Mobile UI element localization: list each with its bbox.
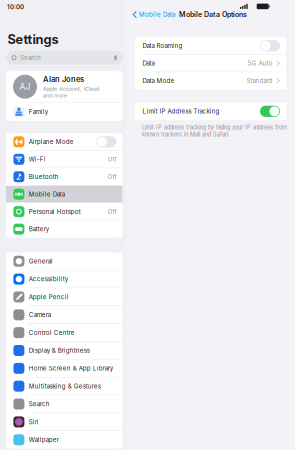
- button[interactable]: Control Centre: [6, 324, 122, 341]
- button[interactable]: Wallpaper: [6, 431, 122, 448]
- button[interactable]: Bluetooth: [6, 168, 122, 185]
- staticText: 5G Auto: [247, 59, 272, 67]
- staticText: known trackers in Mail and Safari.: [142, 131, 230, 138]
- staticText: Accessibility: [29, 275, 68, 283]
- button[interactable]: AJ: [6, 71, 122, 102]
- button[interactable]: Battery: [6, 221, 122, 237]
- staticText: Apple Account, iCloud: [43, 85, 99, 92]
- button[interactable]: Airplane Mode: [6, 133, 122, 150]
- staticText: AJ: [19, 81, 30, 92]
- staticText: Display & Brightness: [29, 347, 90, 354]
- button[interactable]: Accessibility: [6, 270, 122, 288]
- button[interactable]: Mobile Data: [130, 8, 177, 20]
- staticText: Data Roaming: [142, 42, 182, 49]
- staticText: Apple Pencil: [29, 293, 69, 301]
- staticText: General: [29, 257, 53, 265]
- button[interactable]: Siri: [6, 413, 122, 430]
- button[interactable]: Data Mode: [135, 72, 286, 89]
- staticText: Family: [29, 108, 48, 115]
- button[interactable]: Data: [135, 55, 286, 72]
- staticText: Search: [20, 54, 41, 61]
- staticText: Off: [107, 173, 116, 180]
- staticText: 10:00: [7, 3, 24, 11]
- button[interactable]: Mobile Data: [6, 186, 122, 203]
- button[interactable]: Apple Pencil: [6, 288, 122, 306]
- button[interactable]: Limit IP Address Tracking: [135, 103, 286, 120]
- staticText: Camera: [29, 311, 51, 318]
- button[interactable]: General: [6, 253, 122, 270]
- staticText: Alan Jones: [43, 75, 84, 84]
- staticText: Battery: [29, 225, 49, 233]
- button[interactable]: Multitasking & Gestures: [6, 377, 122, 395]
- staticText: Mobile Data: [29, 190, 65, 198]
- staticText: Data Mode: [142, 77, 174, 84]
- staticText: Standard: [246, 77, 272, 84]
- staticText: Data: [142, 59, 154, 67]
- staticText: Off: [107, 208, 116, 215]
- staticText: Search: [29, 400, 50, 408]
- button[interactable]: Display & Brightness: [6, 342, 122, 359]
- button[interactable]: Personal Hotspot: [6, 203, 122, 220]
- staticText: Control Centre: [29, 329, 75, 336]
- staticText: Personal Hotspot: [29, 208, 81, 215]
- button[interactable]: Search: [6, 395, 122, 413]
- staticText: Wallpaper: [29, 436, 59, 443]
- staticText: and more: [43, 92, 67, 99]
- staticText: Bluetooth: [29, 173, 59, 180]
- button[interactable]: Data Roaming: [135, 37, 286, 54]
- staticText: Settings: [8, 31, 59, 47]
- staticText: Siri: [29, 418, 39, 426]
- staticText: Wi-Fi: [29, 155, 46, 163]
- staticText: Multitasking & Gestures: [29, 382, 101, 390]
- staticText: Home Screen & App Library: [29, 365, 113, 372]
- button[interactable]: Wi-Fi: [6, 151, 122, 168]
- staticText: Limit IP Address Tracking: [142, 107, 219, 115]
- staticText: Airplane Mode: [29, 138, 74, 146]
- button[interactable]: Home Screen & App Library: [6, 360, 122, 377]
- button[interactable]: Camera: [6, 306, 122, 323]
- button[interactable]: Family: [6, 103, 122, 121]
- staticText: Mobile Data: [139, 11, 175, 18]
- staticText: Off: [107, 155, 116, 163]
- staticText: Limit IP address tracking by hiding your…: [142, 124, 287, 131]
- staticText: Mobile Data Options: [179, 10, 247, 19]
